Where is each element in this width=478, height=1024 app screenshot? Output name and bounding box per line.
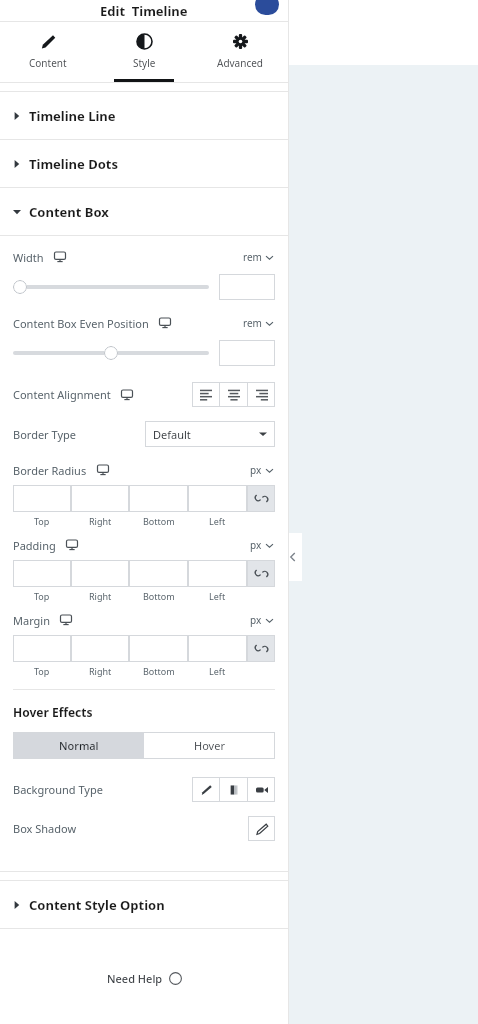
staticText: Advanced bbox=[217, 56, 263, 70]
staticText: Box Shadow bbox=[13, 821, 77, 836]
staticText: Timeline Line bbox=[29, 107, 116, 125]
button[interactable]: Advanced bbox=[192, 22, 288, 82]
button[interactable]: Style bbox=[96, 22, 192, 82]
button[interactable] bbox=[129, 635, 188, 662]
staticText: Default bbox=[153, 427, 191, 442]
staticText: px bbox=[250, 613, 262, 627]
staticText: Content Box bbox=[29, 203, 109, 221]
button[interactable] bbox=[219, 274, 275, 300]
button[interactable] bbox=[71, 560, 129, 587]
staticText: Bottom bbox=[143, 665, 175, 677]
staticText: Content Alignment bbox=[13, 387, 111, 402]
button[interactable] bbox=[188, 485, 247, 512]
button[interactable] bbox=[129, 560, 188, 587]
button[interactable] bbox=[188, 560, 247, 587]
button[interactable]: rem bbox=[241, 314, 275, 332]
staticText: Left bbox=[209, 665, 226, 677]
button[interactable] bbox=[129, 485, 188, 512]
button[interactable]: Content bbox=[0, 22, 96, 82]
button[interactable]: Need Help bbox=[0, 971, 288, 986]
staticText: Content Box Even Position bbox=[13, 316, 149, 331]
staticText: Content bbox=[29, 56, 67, 70]
staticText: rem bbox=[243, 250, 262, 264]
staticText: Hover Effects bbox=[13, 704, 93, 720]
staticText: Style bbox=[133, 56, 156, 70]
staticText: px bbox=[250, 463, 262, 477]
staticText: Right bbox=[89, 665, 112, 677]
staticText: Margin bbox=[13, 613, 50, 628]
button[interactable]: Link values bbox=[247, 560, 275, 587]
button[interactable] bbox=[188, 635, 247, 662]
button[interactable]: Timeline Dots bbox=[0, 140, 288, 188]
button[interactable]: Content Box bbox=[0, 188, 288, 236]
staticText: Left bbox=[209, 515, 226, 527]
staticText: Border Type bbox=[13, 427, 76, 442]
button[interactable] bbox=[71, 485, 129, 512]
button[interactable]: Link values bbox=[247, 635, 275, 662]
button[interactable] bbox=[248, 382, 275, 407]
staticText: Hover bbox=[194, 738, 225, 753]
staticText: rem bbox=[243, 316, 262, 330]
button[interactable]: Timeline Line bbox=[0, 92, 288, 140]
button[interactable] bbox=[13, 635, 71, 662]
button[interactable]: Update bbox=[255, 0, 279, 15]
button[interactable] bbox=[220, 382, 247, 407]
staticText: Padding bbox=[13, 538, 56, 553]
staticText: Background Type bbox=[13, 782, 103, 797]
button[interactable] bbox=[13, 560, 71, 587]
button[interactable]: Default bbox=[145, 421, 275, 447]
button[interactable] bbox=[192, 382, 219, 407]
button[interactable]: Normal bbox=[13, 732, 144, 759]
staticText: Right bbox=[89, 515, 112, 527]
button[interactable]: Content Style Option bbox=[0, 881, 288, 929]
staticText: Need Help bbox=[107, 971, 163, 986]
staticText: px bbox=[250, 538, 262, 552]
staticText: Normal bbox=[59, 738, 99, 753]
staticText: Bottom bbox=[143, 590, 175, 602]
staticText: Left bbox=[209, 590, 226, 602]
button[interactable]: Collapse panel bbox=[283, 533, 302, 581]
button[interactable]: Gradient bbox=[220, 777, 247, 802]
staticText: Timeline Dots bbox=[29, 155, 118, 173]
staticText: Top bbox=[34, 665, 50, 677]
button[interactable]: Edit box shadow bbox=[248, 816, 275, 841]
button[interactable] bbox=[13, 280, 27, 294]
button[interactable]: Classic bbox=[192, 777, 219, 802]
button[interactable]: rem bbox=[241, 248, 275, 266]
button[interactable] bbox=[13, 485, 71, 512]
button[interactable]: px bbox=[248, 536, 275, 554]
button[interactable]: Link values bbox=[247, 485, 275, 512]
button[interactable] bbox=[104, 346, 118, 360]
staticText: Border Radius bbox=[13, 463, 87, 478]
staticText: Width bbox=[13, 250, 44, 265]
button[interactable] bbox=[219, 340, 275, 366]
staticText: Edit Timeline bbox=[100, 2, 188, 20]
staticText: Top bbox=[34, 515, 50, 527]
button[interactable]: px bbox=[248, 461, 275, 479]
button[interactable]: Video bbox=[248, 777, 275, 802]
staticText: Right bbox=[89, 590, 112, 602]
button[interactable] bbox=[71, 635, 129, 662]
button[interactable]: px bbox=[248, 611, 275, 629]
staticText: Content Style Option bbox=[29, 896, 165, 914]
staticText: Bottom bbox=[143, 515, 175, 527]
button[interactable]: Hover bbox=[144, 732, 275, 759]
staticText: Top bbox=[34, 590, 50, 602]
